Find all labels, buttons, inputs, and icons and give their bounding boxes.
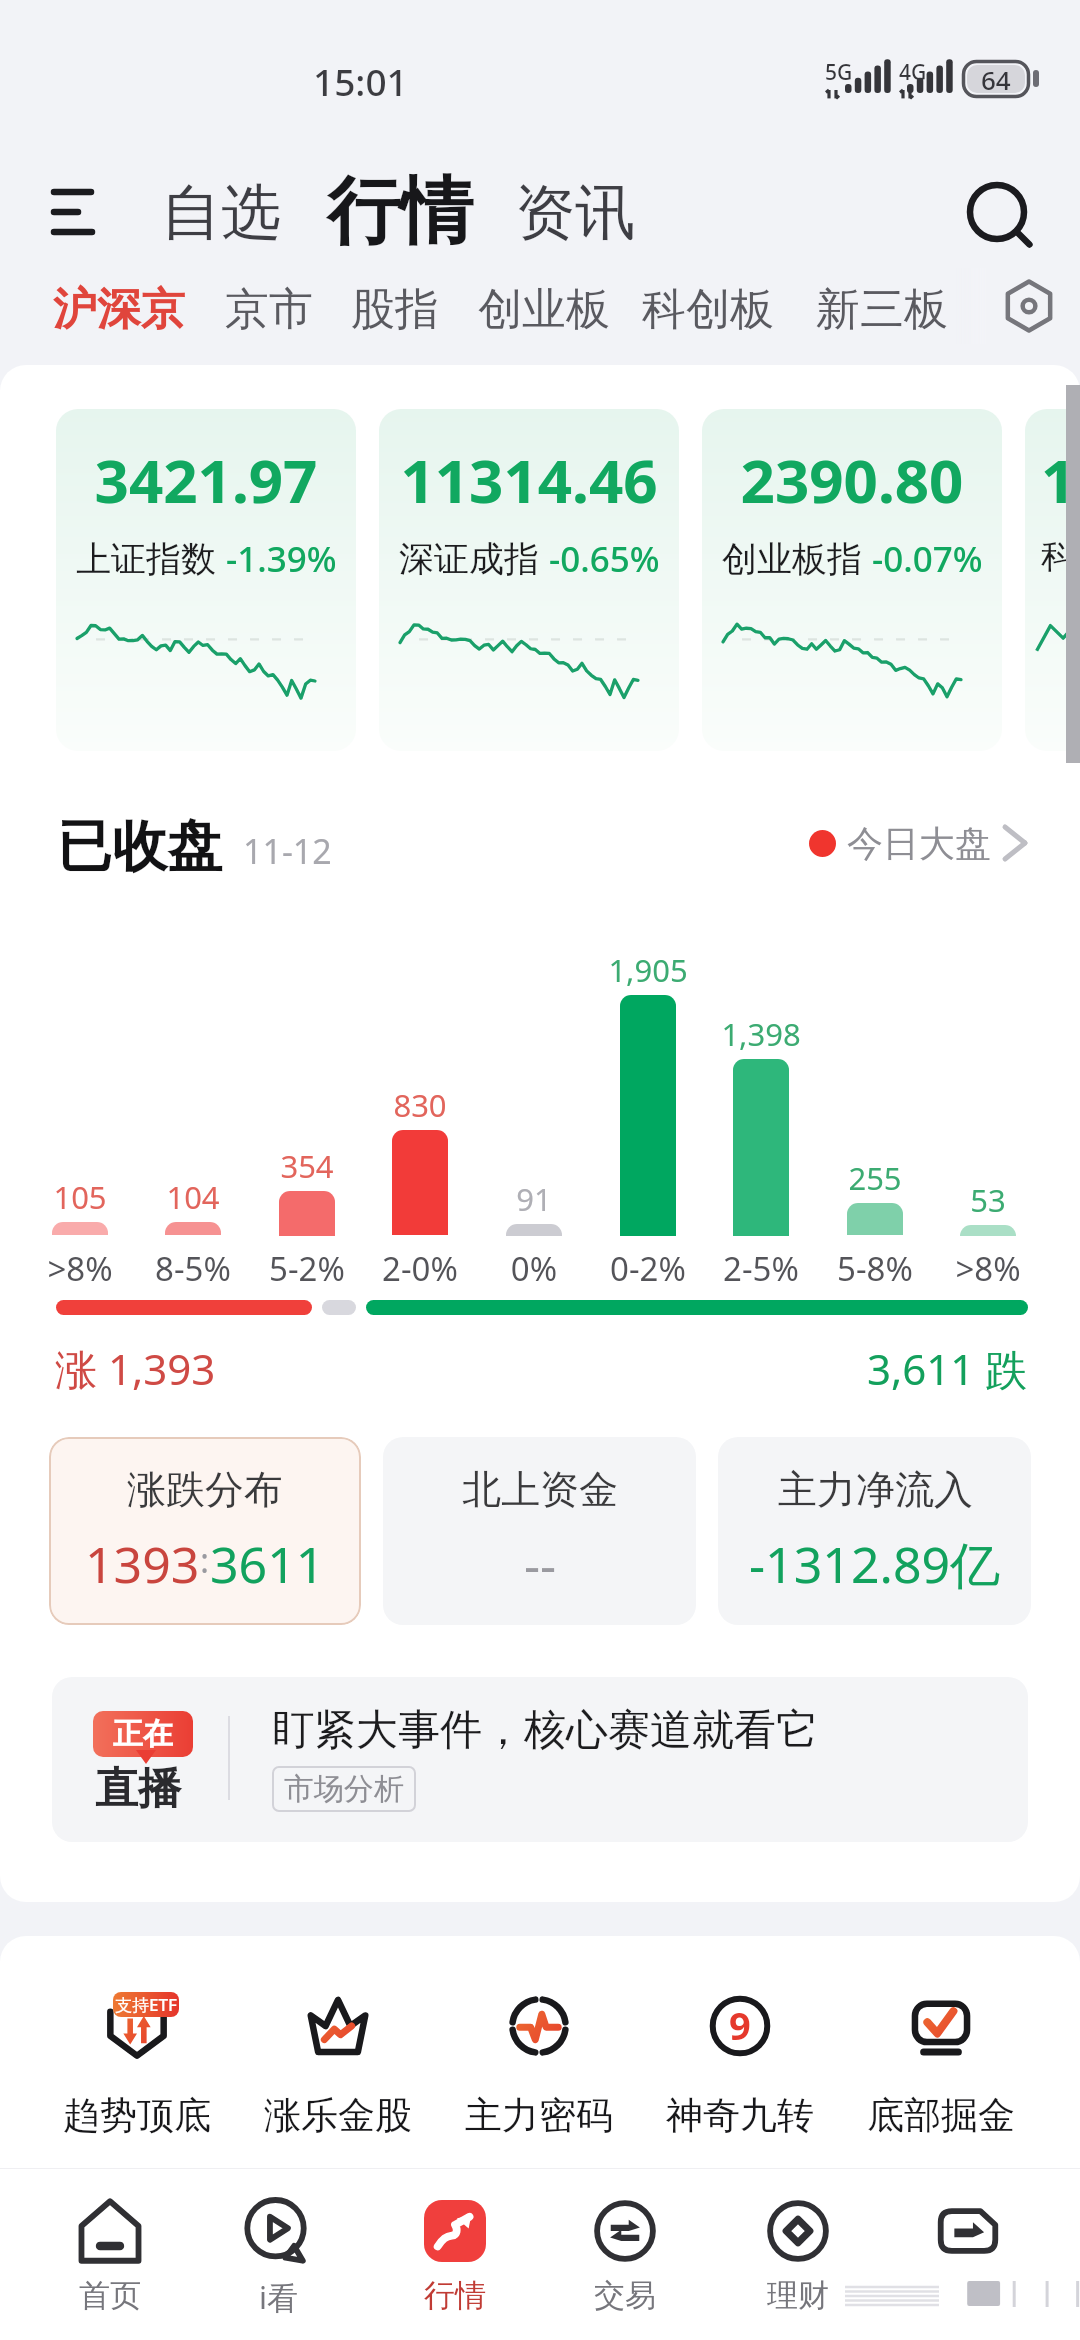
staticText: -0.07% xyxy=(872,535,983,583)
button[interactable]: 京市 xyxy=(213,270,325,349)
staticText: 3421.97 xyxy=(56,439,356,521)
button[interactable]: 涨乐金股 xyxy=(238,1990,438,2139)
button[interactable]: 1 xyxy=(1025,409,1078,751)
button[interactable]: 涨跌分布 xyxy=(49,1437,361,1625)
button[interactable]: 理财 xyxy=(708,2198,888,2315)
button[interactable]: 资讯 xyxy=(503,161,647,265)
staticText: 2390.80 xyxy=(702,439,1002,521)
button[interactable]: 创业板 xyxy=(466,270,622,349)
staticText: -1.39% xyxy=(226,535,337,583)
staticText: 已收盘 xyxy=(57,812,222,881)
staticText: 涨跌分布 xyxy=(127,1465,283,1514)
staticText: 创业板 xyxy=(478,282,610,337)
staticText: 科创板 xyxy=(642,282,774,337)
staticText: 首页 xyxy=(79,2276,141,2315)
staticText: 255 xyxy=(815,1157,935,1199)
button[interactable]: Menu xyxy=(40,176,106,246)
staticText: 354 xyxy=(247,1145,367,1187)
button[interactable]: 9 xyxy=(640,1990,840,2139)
button[interactable]: 自选 xyxy=(149,161,293,265)
button[interactable]: 北上资金 xyxy=(383,1437,696,1625)
staticText: 53 xyxy=(928,1179,1048,1221)
staticText: 8-5% xyxy=(123,1246,263,1291)
staticText: 神奇九转 xyxy=(666,2092,814,2139)
staticText: 市场分析 xyxy=(284,1770,404,1808)
staticText: 股指 xyxy=(351,282,439,337)
staticText: 北上资金 xyxy=(462,1465,618,1514)
button[interactable]: 底部掘金 xyxy=(841,1990,1041,2139)
staticText: 9 xyxy=(729,1999,751,2051)
staticText: 沪深京 xyxy=(53,282,185,337)
button[interactable]: 首页 xyxy=(20,2198,200,2315)
staticText: i看 xyxy=(259,2276,298,2318)
staticText: 创业板指 xyxy=(722,537,862,581)
staticText: 830 xyxy=(360,1084,480,1126)
staticText: 主力密码 xyxy=(465,2092,613,2139)
button[interactable]: 今日大盘 xyxy=(795,812,1040,874)
staticText: 深证成指 xyxy=(399,537,539,581)
staticText: 盯紧大事件，核心赛道就看它 xyxy=(272,1704,818,1757)
staticText: 1393 xyxy=(85,1530,200,1598)
staticText: >8% xyxy=(10,1246,150,1291)
button[interactable]: 科创板 xyxy=(630,270,786,349)
staticText: 涨乐金股 xyxy=(264,2092,412,2139)
button[interactable]: 主力密码 xyxy=(439,1990,639,2139)
staticText: 3,611 跌 xyxy=(867,1340,1028,1397)
staticText: 5G xyxy=(825,58,853,87)
staticText: 91 xyxy=(474,1178,594,1220)
staticText: -1312.89亿 xyxy=(749,1530,1001,1598)
button[interactable]: 行情 xyxy=(365,2198,545,2315)
button[interactable]: 交易 xyxy=(535,2198,715,2315)
staticText: 涨 1,393 xyxy=(55,1340,216,1397)
staticText: 行情 xyxy=(327,166,473,258)
button[interactable]: 新三板 xyxy=(804,270,960,349)
staticText: 正在 xyxy=(113,1715,173,1753)
staticText: : xyxy=(200,1537,210,1583)
staticText: 11-12 xyxy=(243,828,332,874)
staticText: -- xyxy=(524,1530,557,1598)
button[interactable]: 3421.97 xyxy=(56,409,356,751)
staticText: 5-2% xyxy=(237,1246,377,1291)
staticText: 科 xyxy=(1041,534,1076,578)
staticText: 64 xyxy=(981,62,1011,97)
button[interactable]: 支持ETF xyxy=(37,1990,237,2139)
button[interactable]: 沪深京 xyxy=(41,270,197,349)
button[interactable]: More xyxy=(878,2198,1058,2276)
staticText: 0% xyxy=(464,1246,604,1291)
staticText: 趋势顶底 xyxy=(63,2092,211,2139)
staticText: 11314.46 xyxy=(379,439,679,521)
staticText: 2-5% xyxy=(691,1246,831,1291)
staticText: 资讯 xyxy=(515,175,635,251)
staticText: 3611 xyxy=(210,1530,325,1598)
staticText: 0-2% xyxy=(578,1246,718,1291)
staticText: 2-0% xyxy=(350,1246,490,1291)
staticText: 新三板 xyxy=(816,282,948,337)
button[interactable]: 股指 xyxy=(339,270,451,349)
staticText: 15:01 xyxy=(313,56,408,106)
staticText: 1,398 xyxy=(701,1013,821,1055)
staticText: 交易 xyxy=(594,2276,656,2315)
staticText: 1,905 xyxy=(588,949,708,991)
staticText: 1 xyxy=(1041,439,1076,521)
staticText: 支持ETF xyxy=(115,1993,177,2016)
staticText: 京市 xyxy=(225,282,313,337)
button[interactable]: 行情 xyxy=(315,152,485,272)
button[interactable]: 2390.80 xyxy=(702,409,1002,751)
staticText: 104 xyxy=(133,1176,253,1218)
staticText: 上证指数 xyxy=(76,537,216,581)
staticText: 今日大盘 xyxy=(847,821,991,866)
staticText: 理财 xyxy=(767,2276,829,2315)
staticText: 105 xyxy=(20,1176,140,1218)
staticText: >8% xyxy=(918,1246,1058,1291)
staticText: 行情 xyxy=(424,2276,486,2315)
staticText: -0.65% xyxy=(549,535,660,583)
button[interactable]: Settings xyxy=(988,268,1070,344)
staticText: 底部掘金 xyxy=(867,2092,1015,2139)
staticText: 4G xyxy=(899,58,927,87)
button[interactable]: i看 xyxy=(188,2198,368,2318)
button[interactable]: 11314.46 xyxy=(379,409,679,751)
button[interactable] xyxy=(52,1677,1028,1842)
button[interactable]: 主力净流入 xyxy=(718,1437,1031,1625)
staticText: 5-8% xyxy=(805,1246,945,1291)
button[interactable]: Search xyxy=(956,170,1038,252)
